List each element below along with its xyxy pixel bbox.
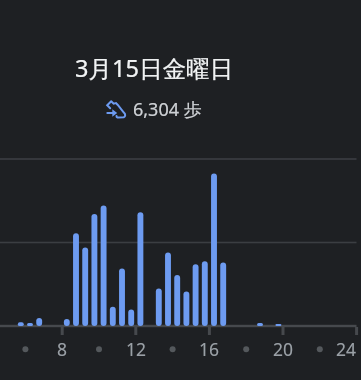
staticText: 24 (326, 337, 361, 361)
other: Steps (106, 100, 127, 119)
staticText: 3月15日金曜日 (75, 52, 233, 84)
staticText: 6,304 歩 (133, 97, 202, 122)
staticText: 16 (189, 337, 229, 361)
button[interactable]: 3月15日金曜日 (1, 52, 307, 122)
staticText: 8 (42, 337, 82, 361)
staticText: 12 (116, 337, 156, 361)
staticText: 20 (263, 337, 303, 361)
